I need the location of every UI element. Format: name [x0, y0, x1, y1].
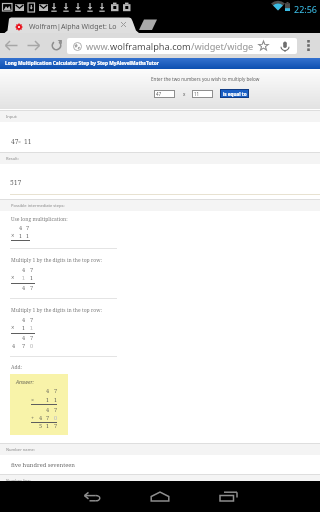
staticText: 4 — [22, 316, 26, 323]
button[interactable]: Bookmark — [258, 40, 269, 51]
button[interactable]: is equal to — [220, 89, 249, 98]
staticText: 4 — [22, 334, 26, 341]
staticText: 4 — [19, 224, 23, 231]
staticText: 7 — [30, 316, 34, 323]
staticText: 1 — [30, 274, 34, 281]
staticText: 4 — [12, 342, 16, 349]
staticText: 1 — [46, 396, 50, 403]
staticText: 4 — [22, 266, 26, 273]
staticText: 11 — [194, 91, 200, 97]
staticText: 1 — [22, 324, 26, 331]
button[interactable]: Home — [136, 481, 184, 512]
button[interactable]: 47 — [154, 90, 175, 98]
button[interactable]: Voice search — [279, 40, 291, 52]
staticText: 22:56 — [294, 3, 318, 15]
staticText: 517 — [10, 178, 22, 187]
staticText: Multiply 1 by the digits in the top row: — [11, 257, 102, 264]
staticText: 1 — [19, 232, 23, 239]
staticText: 7 — [54, 422, 58, 429]
staticText: 47 — [156, 91, 162, 97]
staticText: Answer: — [16, 378, 34, 385]
button[interactable]: Reload — [47, 36, 66, 55]
staticText: Wolfram|Alpha Widget: Lo — [29, 22, 117, 32]
button[interactable]: More options — [300, 37, 317, 54]
button[interactable]: Wolfram|Alpha Widget: Lo — [15, 20, 131, 33]
staticText: 7 — [30, 266, 34, 273]
staticText: 47 — [11, 137, 19, 146]
button[interactable]: www. — [67, 38, 297, 54]
staticText: × — [11, 231, 15, 239]
button[interactable]: Back — [2, 36, 21, 55]
staticText: Use long multiplication: — [11, 216, 68, 223]
staticText: 4 — [46, 387, 50, 394]
staticText: Multiply 1 by the digits in the top row: — [11, 307, 102, 314]
staticText: 4 — [46, 406, 50, 413]
staticText: 0 — [30, 342, 34, 349]
staticText: Enter the two numbers you wish to multip… — [151, 76, 260, 82]
staticText: is equal to — [223, 91, 247, 97]
button[interactable]: Back — [68, 481, 116, 512]
button[interactable]: 11 — [192, 90, 213, 98]
staticText: × — [11, 323, 15, 331]
staticText: × — [11, 273, 15, 281]
staticText: five hundred seventeen — [11, 461, 76, 469]
staticText: Possible intermediate steps: — [11, 203, 65, 209]
staticText: 7 — [30, 334, 34, 341]
staticText: 1 — [30, 324, 34, 331]
staticText: Input: — [6, 114, 18, 120]
staticText: 7 — [54, 387, 58, 394]
button[interactable]: Close tab — [119, 20, 128, 29]
staticText: 1 — [22, 274, 26, 281]
button[interactable]: Recent apps — [204, 481, 252, 512]
staticText: 7 — [22, 342, 26, 349]
staticText: 7 — [26, 224, 30, 231]
staticText: Number line: — [6, 478, 31, 484]
staticText: 1 — [54, 396, 58, 403]
staticText: Long Multiplication Calculator Step by S… — [5, 60, 159, 67]
staticText: 4 — [39, 414, 43, 421]
staticText: Add: — [11, 364, 22, 371]
staticText: 7 — [30, 284, 34, 291]
staticText: 4 — [22, 284, 26, 291]
staticText: Result: — [6, 156, 19, 162]
staticText: × — [18, 138, 22, 145]
staticText: Number name: — [6, 447, 35, 453]
staticText: x — [183, 91, 186, 97]
staticText: www. — [86, 40, 110, 53]
staticText: 11 — [24, 137, 32, 146]
staticText: × — [31, 396, 35, 403]
staticText: 1 — [26, 232, 30, 239]
staticText: /widget/widge — [191, 40, 254, 53]
staticText: 1 — [46, 422, 50, 429]
button[interactable]: Forward — [24, 36, 43, 55]
staticText: 5 — [39, 422, 43, 429]
staticText: + — [31, 414, 35, 421]
staticText: 7 — [54, 406, 58, 413]
staticText: 0 — [54, 414, 58, 421]
staticText: 7 — [46, 414, 50, 421]
staticText: wolframalpha.com — [110, 40, 191, 53]
